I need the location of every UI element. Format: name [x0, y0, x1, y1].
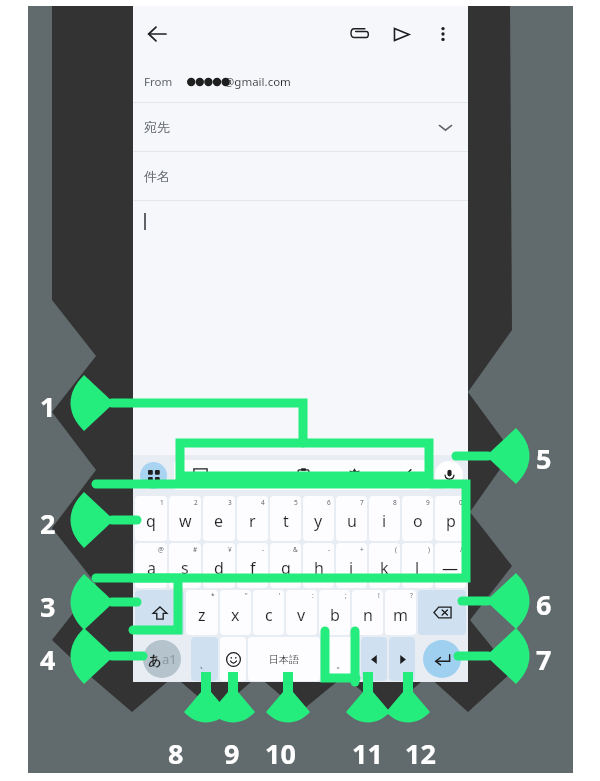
button[interactable]: Shift	[135, 590, 184, 635]
staticText: 宛先	[144, 119, 170, 135]
button[interactable]: /	[435, 543, 466, 588]
staticText: p	[446, 510, 456, 532]
staticText: e	[214, 510, 224, 532]
button[interactable]: Stickers	[174, 460, 226, 490]
button[interactable]: More options	[422, 13, 464, 55]
staticText: z	[198, 604, 206, 626]
staticText: h	[314, 557, 324, 579]
button[interactable]: 0	[435, 496, 466, 541]
staticText: i	[382, 510, 387, 532]
button[interactable]: Move cursor right	[389, 637, 415, 681]
button[interactable]: )	[402, 543, 433, 588]
staticText: *	[211, 591, 215, 600]
staticText: -	[328, 545, 331, 554]
button[interactable]: From	[133, 62, 468, 102]
button[interactable]: -	[303, 543, 334, 588]
button[interactable]: 5	[270, 496, 301, 541]
staticText: ?	[410, 591, 413, 600]
staticText: 。	[336, 658, 346, 671]
staticText: (	[395, 545, 397, 554]
staticText: 9	[426, 498, 430, 507]
staticText: 3	[40, 588, 56, 625]
staticText: n	[363, 604, 373, 626]
button[interactable]: -	[237, 543, 268, 588]
staticText: u	[347, 510, 357, 532]
button[interactable]: ?	[385, 590, 416, 635]
staticText: 7	[360, 498, 364, 507]
staticText: 3	[228, 498, 232, 507]
button[interactable]: "	[220, 590, 251, 635]
staticText: q	[146, 510, 156, 532]
staticText: 9	[224, 735, 240, 772]
staticText: 11	[352, 735, 383, 772]
button[interactable]: Back	[133, 10, 181, 58]
staticText: 件名	[144, 168, 170, 184]
staticText: 4	[40, 641, 56, 678]
staticText: 5	[536, 440, 552, 477]
staticText: 7	[536, 641, 552, 678]
button[interactable]: *	[186, 590, 218, 635]
staticText: s	[181, 557, 189, 579]
button[interactable]: 7	[336, 496, 367, 541]
button[interactable]: 9	[402, 496, 433, 541]
button[interactable]: @	[135, 543, 167, 588]
button[interactable]: 3	[203, 496, 235, 541]
button[interactable]: Voice input	[435, 461, 463, 489]
staticText: 1	[160, 498, 164, 507]
button[interactable]: Enter	[416, 636, 467, 682]
button[interactable]: :	[286, 590, 317, 635]
staticText: 6	[327, 498, 331, 507]
button[interactable]: 、	[191, 637, 218, 681]
staticText: 10	[265, 735, 296, 772]
button[interactable]: +	[336, 543, 367, 588]
button[interactable]: 日本語	[248, 637, 320, 681]
button[interactable]: 8	[369, 496, 400, 541]
button[interactable]: Settings	[329, 460, 380, 490]
staticText: m	[393, 604, 408, 626]
button[interactable]: Keyboard options	[140, 462, 167, 489]
button[interactable]: 宛先	[133, 103, 468, 151]
button[interactable]	[133, 201, 468, 455]
button[interactable]: 件名	[133, 152, 468, 200]
staticText: 0	[459, 498, 463, 507]
staticText: f	[250, 557, 256, 579]
staticText: c	[265, 604, 273, 626]
button[interactable]: &	[270, 543, 301, 588]
button[interactable]: 6	[303, 496, 334, 541]
staticText: l	[415, 557, 420, 579]
button[interactable]: あ	[134, 636, 190, 682]
staticText: :	[312, 591, 314, 600]
staticText: 2	[194, 498, 198, 507]
button[interactable]: Send	[380, 13, 422, 55]
staticText: 4	[261, 498, 265, 507]
staticText: r	[249, 510, 256, 532]
button[interactable]: Move cursor left	[361, 637, 387, 681]
staticText: 8	[168, 735, 184, 772]
staticText: a1	[162, 650, 177, 668]
button[interactable]: Attach	[338, 13, 380, 55]
button[interactable]: GIF	[226, 460, 278, 490]
staticText: -	[262, 545, 265, 554]
staticText: +	[360, 545, 364, 554]
button[interactable]: ;	[319, 590, 350, 635]
button[interactable]: (	[369, 543, 400, 588]
staticText: 8	[393, 498, 397, 507]
button[interactable]: 。	[322, 637, 359, 681]
button[interactable]: Backspace	[418, 590, 466, 635]
staticText: )	[428, 545, 430, 554]
button[interactable]: 4	[237, 496, 268, 541]
button[interactable]: Handwriting	[380, 460, 431, 490]
staticText: —	[442, 557, 459, 579]
staticText: 5	[294, 498, 298, 507]
button[interactable]: Clipboard	[278, 460, 329, 490]
staticText: t	[283, 510, 289, 532]
button[interactable]: '	[253, 590, 284, 635]
button[interactable]: !	[352, 590, 383, 635]
staticText: k	[380, 557, 389, 579]
button[interactable]: 2	[169, 496, 201, 541]
button[interactable]: Emoji	[220, 637, 246, 681]
staticText: o	[413, 510, 423, 532]
button[interactable]: #	[169, 543, 201, 588]
button[interactable]: 1	[135, 496, 167, 541]
button[interactable]: ¥	[203, 543, 235, 588]
